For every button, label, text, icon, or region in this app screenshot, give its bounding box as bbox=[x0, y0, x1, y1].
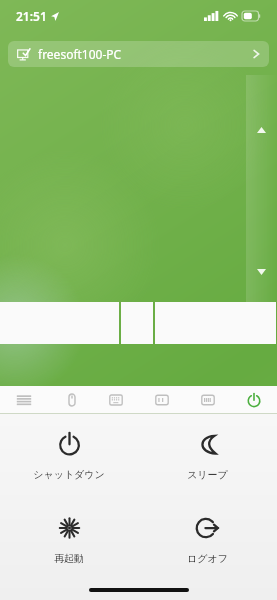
button[interactable]: Power bbox=[231, 386, 277, 413]
button[interactable]: ログオフ bbox=[138, 514, 277, 576]
staticText: 21:51 bbox=[16, 8, 47, 24]
staticText: ログオフ bbox=[187, 552, 228, 565]
button[interactable]: freesoft100-PC bbox=[8, 41, 269, 67]
button[interactable]: 再起動 bbox=[0, 514, 138, 576]
staticText: シャットダウン bbox=[33, 468, 105, 481]
button[interactable]: シャットダウン bbox=[0, 430, 138, 492]
staticText: 再起動 bbox=[54, 552, 84, 565]
staticText: freesoft100-PC bbox=[38, 46, 122, 62]
button[interactable]: スリープ bbox=[138, 430, 277, 492]
button[interactable]: Ctrl bbox=[185, 386, 231, 413]
button[interactable]: Keyboard bbox=[93, 386, 139, 413]
button[interactable]: Mouse bbox=[47, 386, 93, 413]
button[interactable]: Fn bbox=[139, 386, 185, 413]
button[interactable]: Menu bbox=[0, 386, 47, 413]
staticText: スリープ bbox=[187, 468, 228, 481]
